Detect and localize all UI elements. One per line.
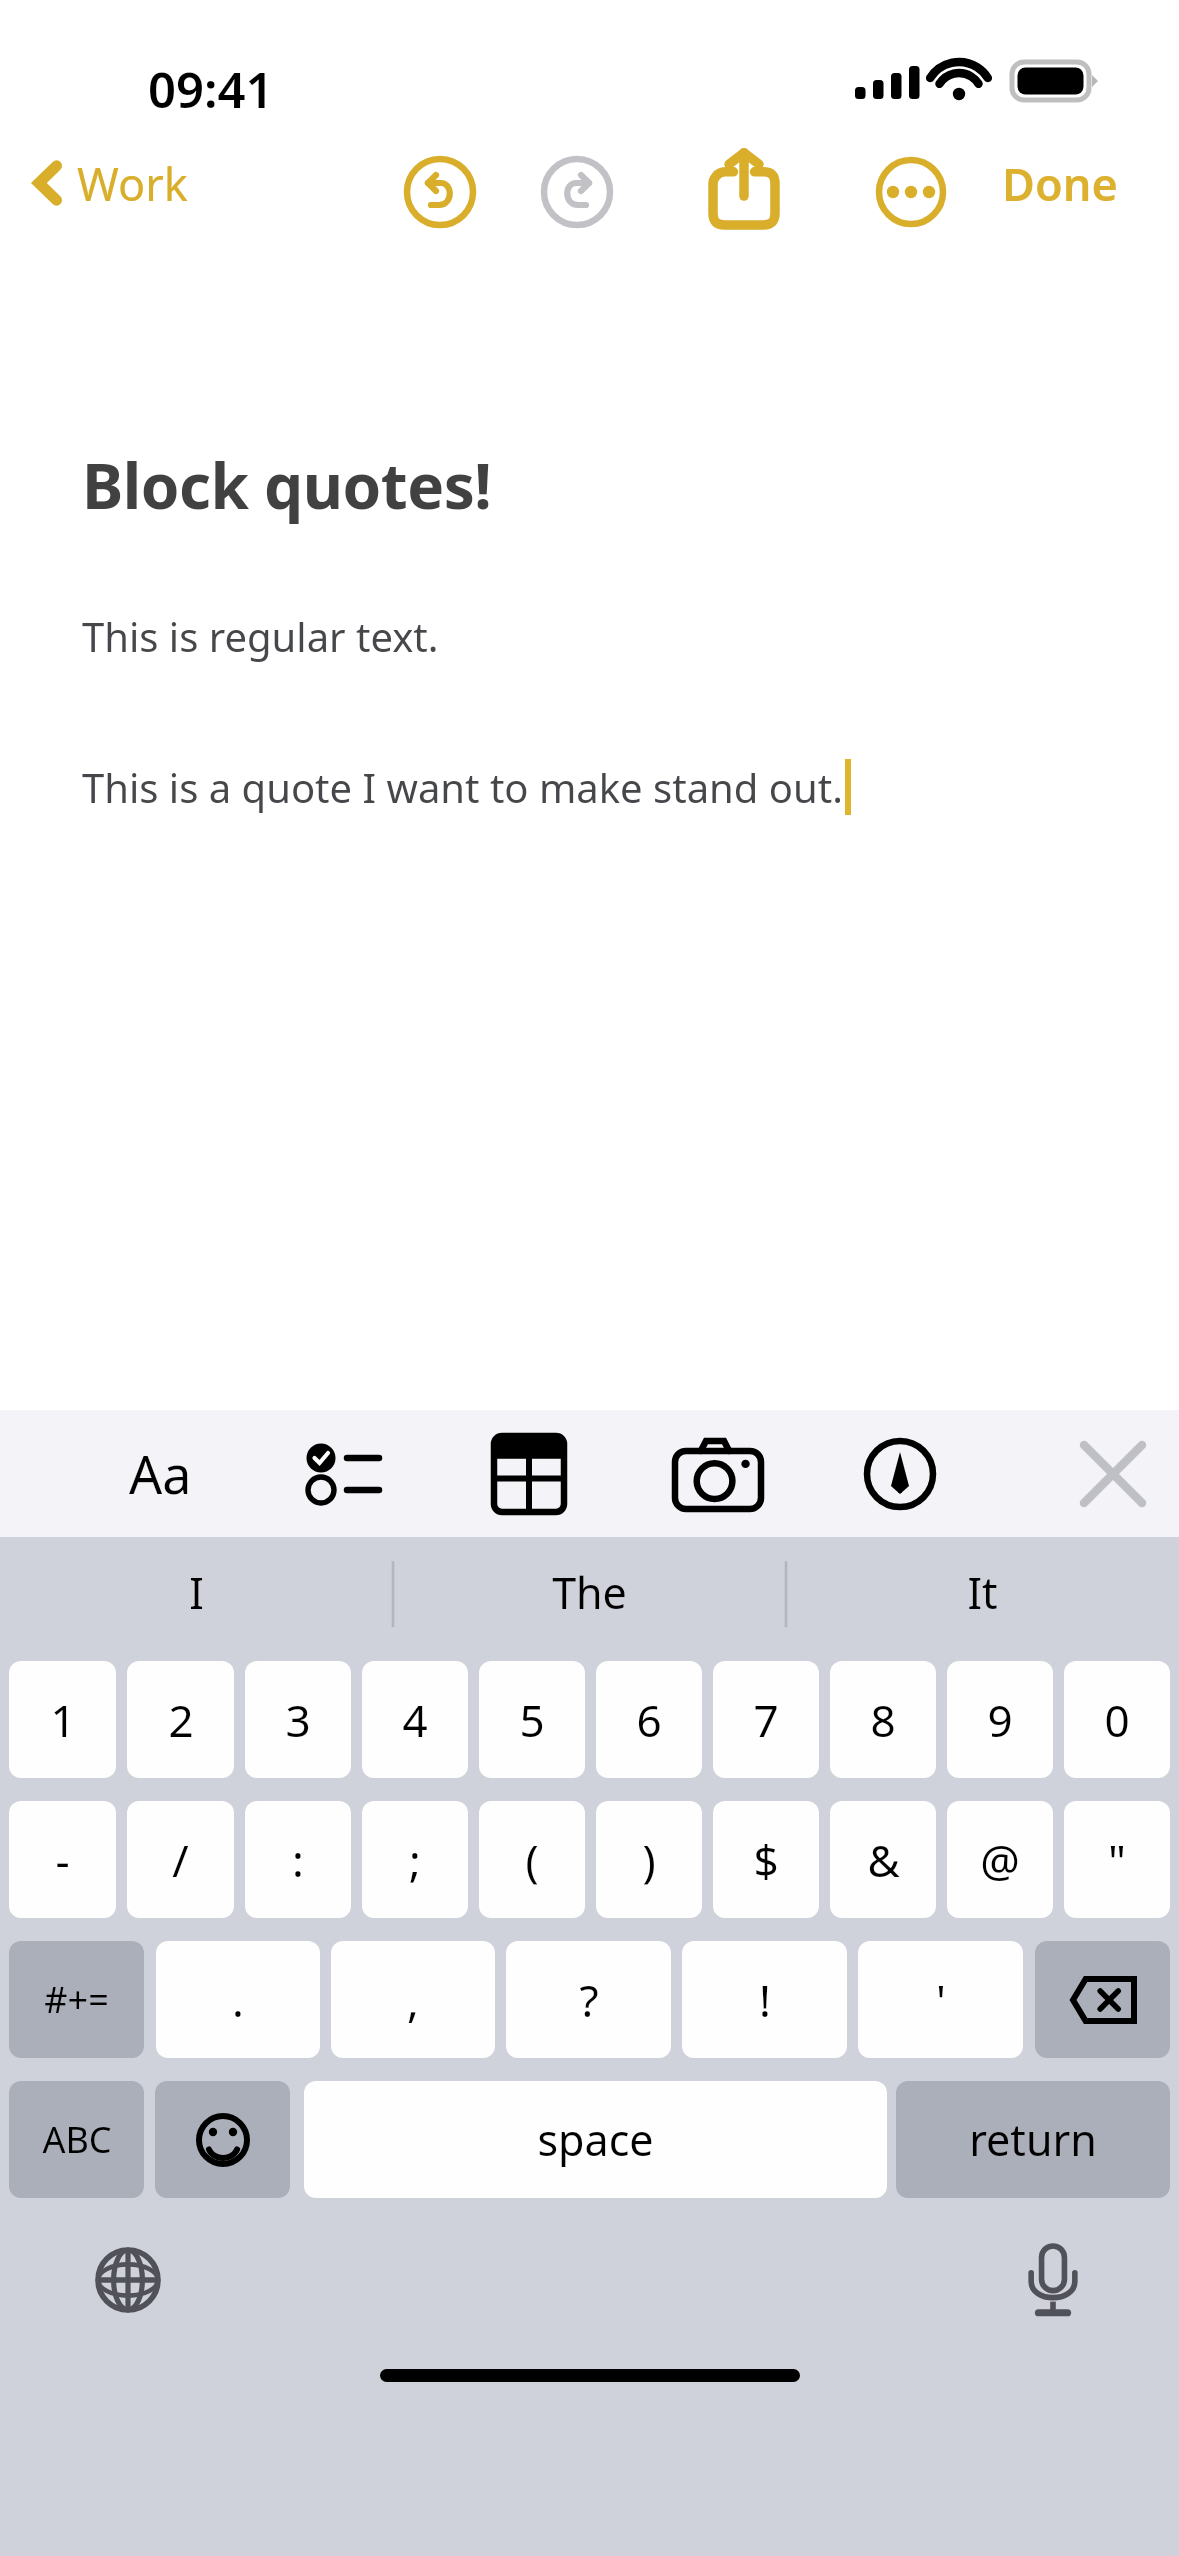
staticText: 4 — [402, 1690, 428, 1750]
staticText: . — [232, 1970, 244, 2030]
staticText: & — [867, 1830, 900, 1890]
staticText: 09:41 — [148, 56, 274, 123]
staticText: 7 — [753, 1690, 779, 1750]
button[interactable]: 5 — [479, 1661, 585, 1778]
staticText: " — [1108, 1830, 1126, 1890]
staticText: I — [189, 1563, 204, 1622]
button[interactable]: : — [245, 1801, 351, 1918]
button[interactable]: / — [127, 1801, 234, 1918]
button[interactable]: ABC — [9, 2081, 144, 2198]
staticText: Block quotes! — [82, 443, 492, 527]
staticText: Work — [77, 153, 188, 214]
button[interactable]: ( — [479, 1801, 585, 1918]
button[interactable]: The — [393, 1537, 786, 1647]
staticText: 6 — [636, 1690, 662, 1750]
staticText: This is a quote I want to make stand out… — [82, 760, 843, 814]
button[interactable]: Redo — [532, 147, 622, 237]
staticText: ) — [642, 1830, 656, 1890]
button[interactable]: Change keyboard — [76, 2228, 180, 2332]
staticText: ' — [936, 1970, 946, 2030]
button[interactable]: More options — [866, 147, 956, 237]
staticText: 2 — [168, 1690, 194, 1750]
button[interactable]: 1 — [9, 1661, 116, 1778]
button[interactable]: ! — [682, 1941, 847, 2058]
staticText: #+= — [44, 1975, 109, 2024]
button[interactable]: 0 — [1064, 1661, 1170, 1778]
staticText: 8 — [870, 1690, 896, 1750]
staticText: 1 — [50, 1690, 76, 1750]
staticText: 9 — [987, 1690, 1013, 1750]
button[interactable]: Done — [990, 128, 1130, 238]
button[interactable]: " — [1064, 1801, 1170, 1918]
button[interactable]: Work — [20, 128, 198, 238]
button[interactable]: , — [331, 1941, 495, 2058]
staticText: , — [407, 1970, 419, 2030]
button[interactable]: ; — [362, 1801, 468, 1918]
button[interactable]: Table — [473, 1420, 585, 1527]
button[interactable]: Share — [699, 142, 789, 232]
staticText: / — [172, 1830, 189, 1890]
button[interactable]: 3 — [245, 1661, 351, 1778]
staticText: ! — [759, 1970, 771, 2030]
staticText: 5 — [519, 1690, 545, 1750]
button[interactable]: Checklist — [287, 1420, 399, 1527]
staticText: It — [967, 1563, 998, 1622]
button[interactable]: It — [786, 1537, 1179, 1647]
button[interactable]: Backspace — [1035, 1941, 1170, 2058]
staticText: The — [552, 1563, 627, 1622]
button[interactable]: I — [0, 1537, 393, 1647]
button[interactable]: 8 — [830, 1661, 936, 1778]
button[interactable]: 2 — [127, 1661, 234, 1778]
staticText: ( — [525, 1830, 539, 1890]
button[interactable]: $ — [713, 1801, 819, 1918]
button[interactable]: ' — [858, 1941, 1023, 2058]
staticText: - — [55, 1830, 70, 1890]
button[interactable]: . — [156, 1941, 320, 2058]
button[interactable]: return — [896, 2081, 1170, 2198]
button[interactable]: Dictation — [1001, 2228, 1105, 2332]
button[interactable]: Text formatting — [104, 1420, 216, 1527]
staticText: space — [537, 2110, 654, 2169]
button[interactable]: @ — [947, 1801, 1053, 1918]
button[interactable]: 9 — [947, 1661, 1053, 1778]
button[interactable]: Markup — [844, 1420, 956, 1527]
button[interactable]: Emoji — [155, 2081, 290, 2198]
button[interactable]: space — [304, 2081, 887, 2198]
staticText: 0 — [1104, 1690, 1130, 1750]
staticText: @ — [980, 1830, 1020, 1890]
button[interactable]: #+= — [9, 1941, 144, 2058]
staticText: : — [292, 1830, 304, 1890]
button[interactable]: 4 — [362, 1661, 468, 1778]
staticText: Done — [1002, 153, 1118, 214]
button[interactable]: Undo — [395, 147, 485, 237]
button[interactable]: - — [9, 1801, 116, 1918]
staticText: ? — [579, 1970, 599, 2030]
button[interactable]: & — [830, 1801, 936, 1918]
staticText: ; — [409, 1830, 421, 1890]
staticText: 3 — [285, 1690, 311, 1750]
staticText: return — [969, 2110, 1097, 2169]
staticText: $ — [753, 1830, 779, 1890]
button[interactable]: ) — [596, 1801, 702, 1918]
button[interactable]: 7 — [713, 1661, 819, 1778]
button[interactable]: Camera — [662, 1420, 774, 1527]
staticText: This is regular text. — [82, 609, 439, 663]
button[interactable]: Close keyboard — [1057, 1420, 1169, 1527]
button[interactable]: ? — [506, 1941, 671, 2058]
button[interactable]: 6 — [596, 1661, 702, 1778]
staticText: Aa — [129, 1438, 192, 1509]
staticText: ABC — [42, 2115, 112, 2164]
